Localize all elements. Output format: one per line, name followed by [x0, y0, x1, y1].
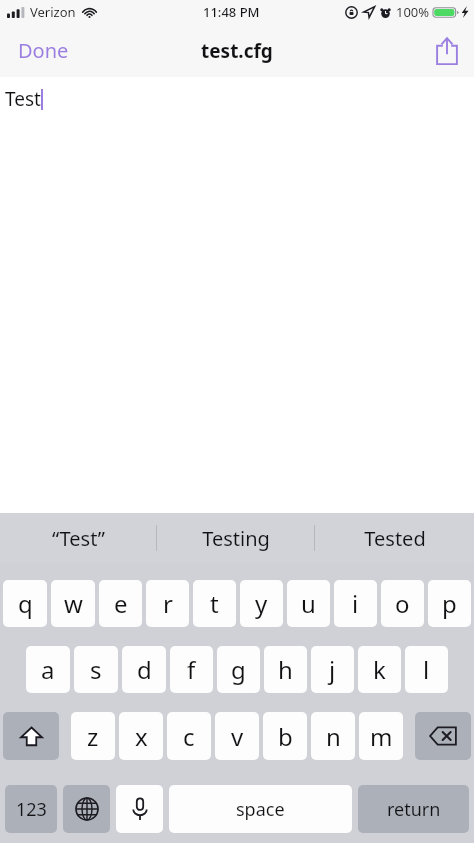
button[interactable]: b — [263, 712, 307, 760]
staticText: z — [87, 720, 99, 753]
staticText: s — [90, 653, 102, 686]
button[interactable]: t — [193, 580, 236, 627]
button[interactable]: i — [334, 580, 377, 627]
staticText: l — [423, 653, 430, 686]
staticText: Done — [18, 37, 69, 64]
button[interactable]: a — [26, 646, 70, 693]
button[interactable]: Switch keyboard — [63, 785, 110, 833]
button[interactable]: Backspace — [415, 712, 471, 760]
button[interactable]: n — [311, 712, 355, 760]
button[interactable]: Shift — [3, 712, 59, 760]
button[interactable]: l — [405, 646, 448, 693]
button[interactable]: c — [167, 712, 211, 760]
staticText: Tested — [364, 525, 426, 552]
staticText: h — [278, 653, 293, 686]
staticText: x — [135, 720, 148, 753]
staticText: a — [41, 653, 55, 686]
button[interactable]: o — [381, 580, 424, 627]
staticText: 123 — [16, 797, 47, 822]
staticText: f — [187, 653, 196, 686]
button[interactable]: g — [217, 646, 260, 693]
staticText: v — [231, 720, 244, 753]
button[interactable]: Dictation — [116, 785, 163, 833]
staticText: w — [64, 587, 83, 620]
staticText: q — [18, 587, 33, 620]
staticText: y — [255, 587, 268, 620]
button[interactable]: w — [51, 580, 95, 627]
button[interactable]: m — [359, 712, 403, 760]
staticText: t — [210, 587, 219, 620]
staticText: Testing — [202, 525, 270, 552]
staticText: i — [352, 587, 359, 620]
button[interactable]: s — [74, 646, 118, 693]
button[interactable]: h — [264, 646, 307, 693]
button[interactable]: d — [122, 646, 166, 693]
button[interactable]: j — [311, 646, 354, 693]
staticText: 11:48 PM — [203, 3, 260, 21]
staticText: Test — [5, 86, 41, 112]
staticText: o — [395, 587, 410, 620]
button[interactable]: Testing — [157, 513, 314, 563]
button[interactable]: q — [3, 580, 47, 627]
staticText: c — [183, 720, 195, 753]
button[interactable]: space — [169, 785, 352, 833]
button[interactable]: r — [146, 580, 189, 627]
staticText: k — [373, 653, 386, 686]
button[interactable]: f — [170, 646, 213, 693]
button[interactable]: v — [215, 712, 259, 760]
staticText: d — [137, 653, 152, 686]
button[interactable]: Share — [420, 24, 474, 77]
button[interactable]: Done — [0, 24, 85, 77]
button[interactable]: y — [240, 580, 283, 627]
button[interactable]: 123 — [5, 785, 57, 833]
button[interactable]: p — [428, 580, 471, 627]
button[interactable]: x — [119, 712, 163, 760]
staticText: p — [442, 587, 457, 620]
button[interactable]: e — [99, 580, 142, 627]
staticText: b — [278, 720, 293, 753]
staticText: u — [301, 587, 316, 620]
button[interactable]: z — [71, 712, 115, 760]
button[interactable]: k — [358, 646, 401, 693]
staticText: e — [114, 587, 128, 620]
staticText: “Test” — [52, 525, 105, 552]
button[interactable]: u — [287, 580, 330, 627]
staticText: 100% — [396, 3, 430, 21]
button[interactable]: return — [358, 785, 469, 833]
staticText: m — [370, 720, 393, 753]
staticText: n — [326, 720, 341, 753]
button[interactable]: Tested — [315, 513, 474, 563]
staticText: g — [231, 653, 246, 686]
staticText: space — [236, 797, 285, 822]
staticText: r — [163, 587, 173, 620]
staticText: j — [329, 653, 336, 686]
staticText: return — [387, 797, 441, 822]
button[interactable]: “Test” — [0, 513, 156, 563]
staticText: test.cfg — [201, 38, 273, 64]
staticText: Verizon — [30, 3, 76, 21]
